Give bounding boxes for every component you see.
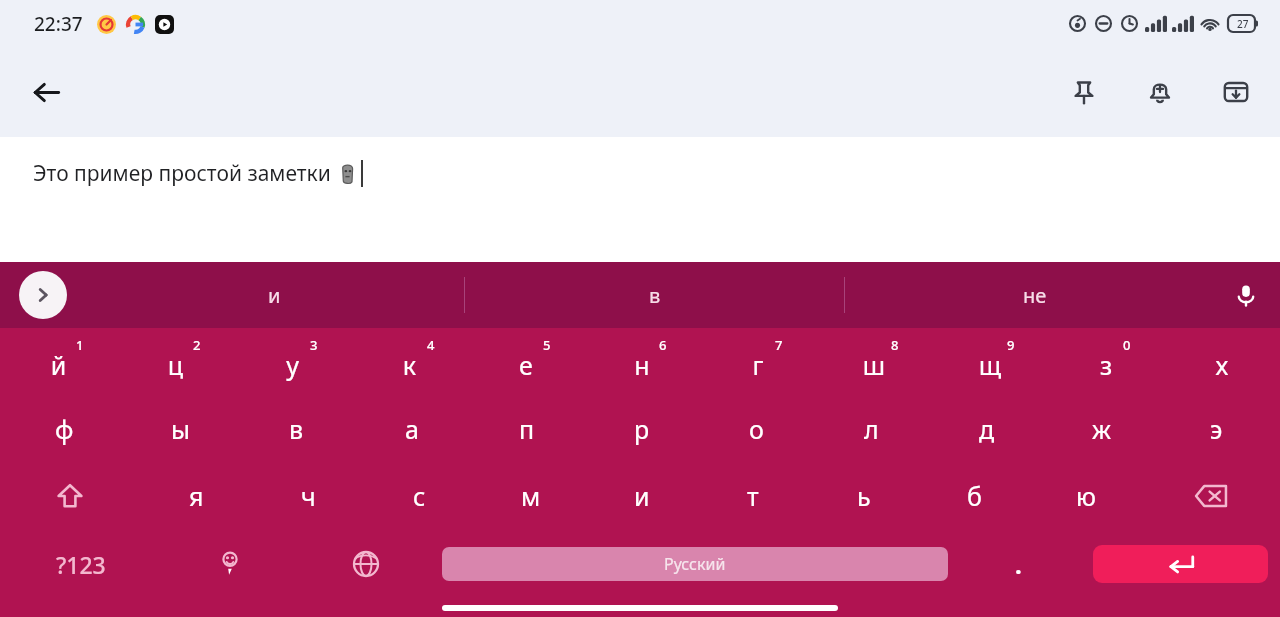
button[interactable]: ц [117, 328, 234, 395]
staticText: я [189, 479, 204, 513]
button[interactable]: Это пример простой заметки [0, 137, 1280, 262]
button[interactable]: й [0, 328, 117, 395]
staticText: в [649, 282, 661, 309]
staticText: б [967, 479, 982, 513]
staticText: 0 [1123, 336, 1131, 354]
staticText: ж [1092, 412, 1111, 446]
button[interactable]: . [956, 529, 1081, 599]
staticText: . [1015, 548, 1022, 581]
staticText: п [519, 412, 535, 446]
staticText: ч [301, 479, 316, 513]
button[interactable]: л [814, 395, 929, 462]
button[interactable]: Enter [1093, 545, 1268, 583]
staticText: о [749, 412, 764, 446]
staticText: Это пример простой заметки [33, 159, 331, 188]
staticText: н [584, 348, 700, 382]
button[interactable]: ?123 [0, 529, 162, 599]
staticText: 5 [543, 336, 551, 354]
button[interactable]: г [700, 328, 816, 395]
button[interactable]: ю [1030, 462, 1141, 529]
button[interactable]: м [475, 462, 586, 529]
button[interactable]: п [469, 395, 584, 462]
staticText: и [634, 479, 650, 513]
staticText: л [864, 412, 879, 446]
button[interactable]: ж [1044, 395, 1159, 462]
button[interactable]: Shift [0, 462, 140, 529]
button[interactable]: щ [932, 328, 1048, 395]
button[interactable]: я [140, 462, 252, 529]
staticText: у [234, 348, 351, 382]
staticText: не [1023, 282, 1047, 309]
button[interactable]: ч [252, 462, 364, 529]
staticText: х [1164, 348, 1280, 382]
button[interactable]: б [919, 462, 1030, 529]
button[interactable]: н [584, 328, 700, 395]
button[interactable]: р [584, 395, 699, 462]
button[interactable]: к [351, 328, 468, 395]
staticText: 6 [659, 336, 667, 354]
staticText: р [634, 412, 650, 446]
staticText: ф [55, 412, 74, 446]
staticText: Русский [664, 553, 726, 575]
button[interactable]: в [465, 262, 844, 328]
button[interactable]: Archive [1212, 68, 1260, 116]
button[interactable]: Voice input [1224, 273, 1268, 317]
button[interactable]: а [354, 395, 469, 462]
staticText: а [405, 412, 419, 446]
staticText: ц [117, 348, 234, 382]
button[interactable]: ш [816, 328, 932, 395]
button[interactable]: и [586, 462, 697, 529]
button[interactable]: Expand toolbar [19, 271, 67, 319]
staticText: щ [932, 348, 1048, 382]
button[interactable]: Add reminder [1136, 68, 1184, 116]
staticText: 8 [891, 336, 899, 354]
staticText: 3 [310, 336, 318, 354]
button[interactable]: т [697, 462, 808, 529]
button[interactable]: х [1164, 328, 1280, 395]
staticText: 4 [427, 336, 435, 354]
button[interactable]: д [929, 395, 1044, 462]
staticText: 1 [76, 336, 84, 354]
staticText: 27 [1237, 17, 1249, 31]
staticText: 22:37 [34, 11, 83, 37]
button[interactable]: Change language [298, 529, 434, 599]
staticText: и [268, 282, 281, 309]
staticText: в [289, 412, 304, 446]
button[interactable]: не [845, 262, 1224, 328]
staticText: д [979, 412, 995, 446]
button[interactable]: о [699, 395, 814, 462]
staticText: й [0, 348, 117, 382]
button[interactable]: ы [122, 395, 238, 462]
button[interactable]: и [84, 262, 464, 328]
button[interactable]: Back [22, 68, 70, 116]
staticText: к [351, 348, 468, 382]
staticText: ю [1076, 479, 1096, 513]
staticText: з [1048, 348, 1164, 382]
staticText: м [521, 479, 541, 513]
button[interactable]: э [1159, 395, 1274, 462]
button[interactable]: в [238, 395, 354, 462]
staticText: ы [171, 412, 190, 446]
staticText: ь [857, 479, 871, 513]
staticText: 7 [775, 336, 783, 354]
staticText: с [413, 479, 426, 513]
button[interactable]: Русский [442, 547, 948, 581]
button[interactable]: Backspace [1141, 462, 1280, 529]
staticText: ш [816, 348, 932, 382]
staticText: 9 [1007, 336, 1015, 354]
staticText: е [468, 348, 584, 382]
staticText: г [700, 348, 816, 382]
button[interactable]: Pin note [1060, 68, 1108, 116]
staticText: ?123 [56, 549, 106, 580]
staticText: 2 [193, 336, 201, 354]
button[interactable]: е [468, 328, 584, 395]
button[interactable]: с [364, 462, 475, 529]
button[interactable]: ф [6, 395, 122, 462]
button[interactable]: з [1048, 328, 1164, 395]
button[interactable]: Emoji [162, 529, 298, 599]
staticText: т [747, 479, 759, 513]
staticText: э [1210, 412, 1223, 446]
button[interactable]: ь [808, 462, 919, 529]
button[interactable]: у [234, 328, 351, 395]
